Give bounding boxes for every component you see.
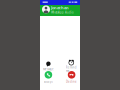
staticText: Jonathan xyxy=(51,5,69,10)
staticText: Accept xyxy=(44,80,53,83)
staticText: Message xyxy=(43,67,54,71)
button[interactable]: Accept xyxy=(41,71,56,84)
staticText: Remind me xyxy=(66,66,77,73)
button[interactable]: Remind me xyxy=(64,62,79,71)
staticText: WhatsApp Audio xyxy=(51,11,74,14)
button[interactable]: Message xyxy=(41,62,56,71)
button[interactable]: Decline xyxy=(64,71,79,84)
staticText: Decline xyxy=(66,80,77,83)
